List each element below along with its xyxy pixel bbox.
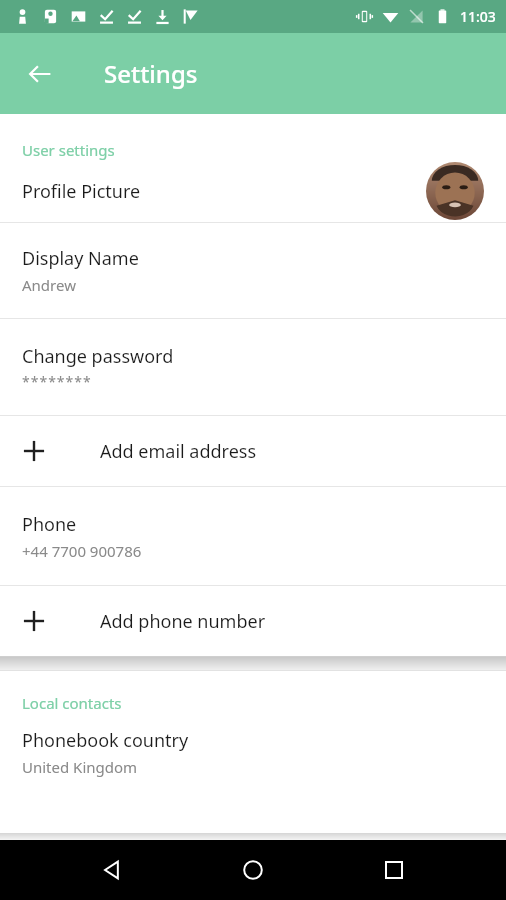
staticText: User settings — [22, 140, 115, 160]
staticText: ******** — [22, 372, 92, 391]
staticText: Change password — [22, 344, 174, 369]
staticText: Settings — [104, 57, 198, 90]
staticText: Phone — [22, 512, 77, 537]
button[interactable]: Phonebook country — [0, 713, 506, 791]
button[interactable]: Change password — [0, 319, 506, 415]
staticText: Profile Picture — [22, 179, 141, 204]
staticText: United Kingdom — [22, 757, 138, 777]
staticText: Add email address — [100, 439, 257, 464]
button[interactable]: Add phone number — [0, 586, 506, 656]
staticText: Local contacts — [22, 693, 122, 713]
button[interactable]: Profile Picture — [0, 160, 506, 222]
button[interactable]: Back — [14, 48, 66, 100]
staticText: Display Name — [22, 246, 139, 271]
button[interactable]: Display Name — [0, 223, 506, 318]
staticText: 11:03 — [460, 7, 496, 26]
staticText: Phonebook country — [22, 728, 189, 753]
button[interactable]: Recent apps — [366, 842, 422, 898]
staticText: Andrew — [22, 275, 76, 295]
button[interactable]: Back — [85, 842, 141, 898]
button[interactable]: Home — [225, 842, 281, 898]
button[interactable]: Add email address — [0, 416, 506, 486]
staticText: +44 7700 900786 — [22, 541, 142, 561]
staticText: Add phone number — [100, 609, 266, 634]
button[interactable]: Phone — [0, 487, 506, 585]
